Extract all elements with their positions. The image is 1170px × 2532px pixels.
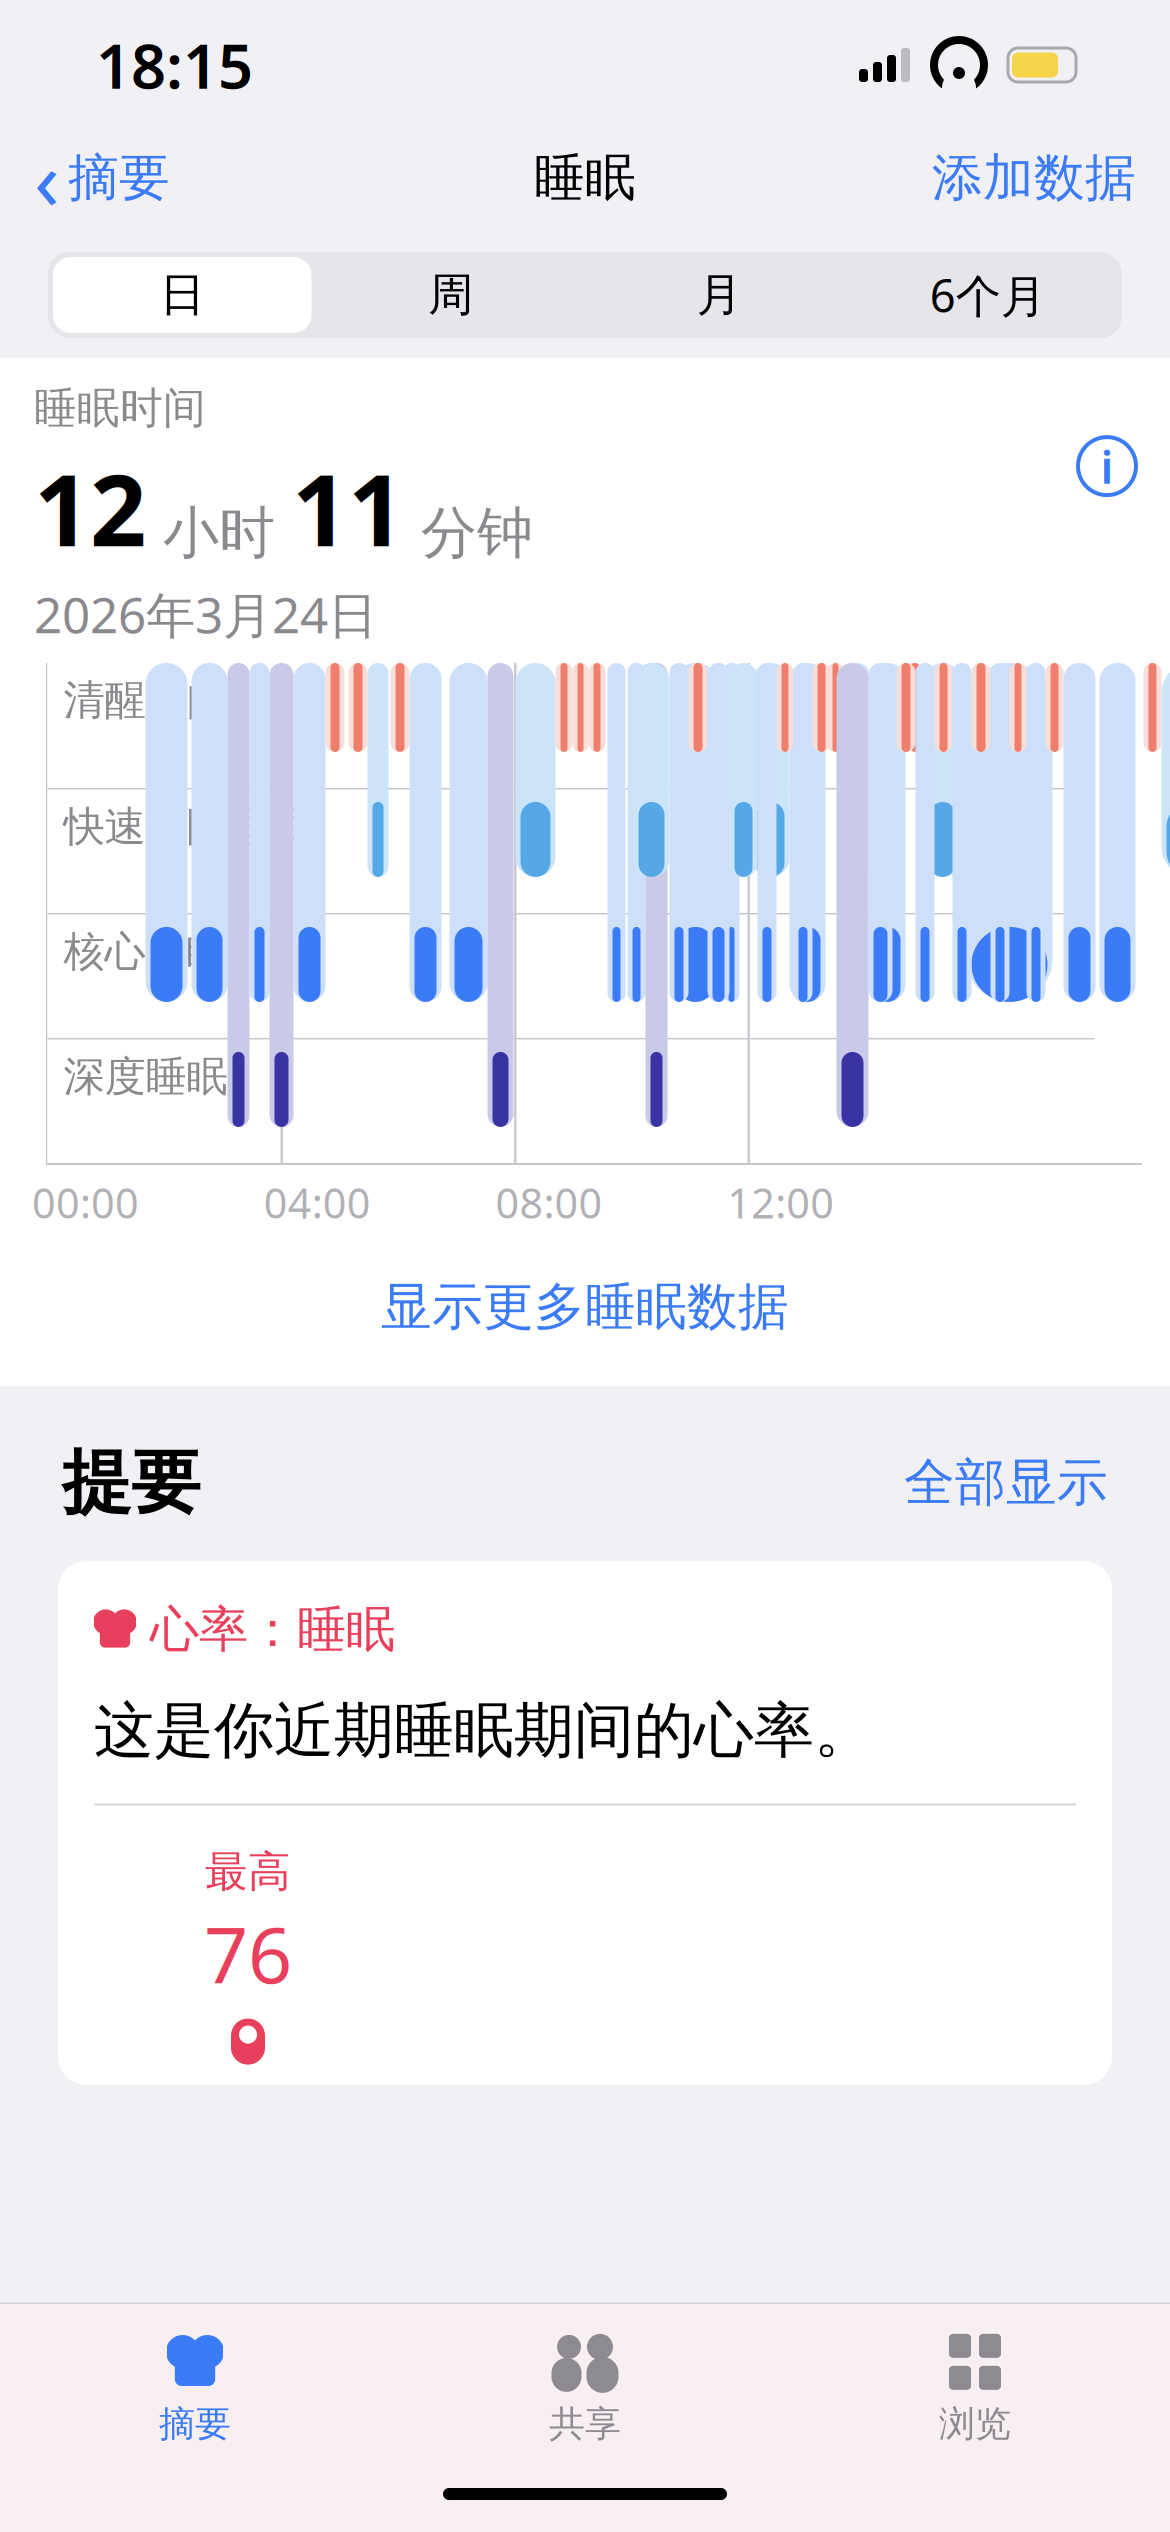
button[interactable]: 6个月 xyxy=(853,252,1122,338)
button[interactable]: 摘要 xyxy=(0,2314,390,2446)
staticText: 添加数据 xyxy=(932,147,1136,209)
staticText: 睡眠时间 xyxy=(34,382,206,434)
staticText: 04:00 xyxy=(264,1175,371,1230)
staticText: 这是你近期睡眠期间的心率。 xyxy=(94,1694,874,1767)
staticText: 12 xyxy=(34,442,146,573)
staticText: 18:15 xyxy=(96,24,253,106)
staticText: 深度睡眠 xyxy=(63,1051,227,1102)
button[interactable]: 关于睡眠数据 xyxy=(1064,422,1150,510)
button[interactable]: ‹ xyxy=(0,113,170,243)
staticText: 76 xyxy=(204,1902,292,2005)
button[interactable]: 浏览 xyxy=(780,2314,1170,2446)
staticText: 心率：睡眠 xyxy=(150,1599,395,1660)
button[interactable]: 周 xyxy=(316,252,585,338)
staticText: 00:00 xyxy=(32,1175,139,1230)
staticText: 浏览 xyxy=(939,2402,1011,2446)
staticText: ‹ xyxy=(34,123,60,233)
staticText: 11 xyxy=(292,442,404,573)
staticText: 显示更多睡眠数据 xyxy=(381,1276,789,1338)
staticText: 6个月 xyxy=(930,265,1046,325)
staticText: 最高 xyxy=(205,1845,291,1898)
staticText: 小时 xyxy=(146,499,292,567)
staticText: 全部显示 xyxy=(904,1451,1108,1514)
button[interactable]: 月 xyxy=(585,252,853,338)
staticText: 快速动眼睡眠 xyxy=(63,801,309,852)
staticText: 提要 xyxy=(62,1440,200,1525)
staticText: 睡眠 xyxy=(534,147,636,209)
staticText: 清醒时间 xyxy=(63,675,227,726)
button[interactable]: 全部显示 xyxy=(904,1443,1108,1522)
staticText: 核心睡眠 xyxy=(63,926,227,977)
staticText: 周 xyxy=(428,267,473,323)
button[interactable]: 心率：睡眠 xyxy=(58,1561,1112,2085)
staticText: 2026年3月24日 xyxy=(34,581,377,647)
button[interactable]: 添加数据 xyxy=(932,137,1170,219)
button[interactable]: 显示更多睡眠数据 xyxy=(0,1242,1170,1372)
staticText: 分钟 xyxy=(404,499,533,567)
staticText: 共享 xyxy=(549,2402,621,2446)
staticText: 08:00 xyxy=(495,1175,602,1230)
staticText: 摘要 xyxy=(68,147,170,209)
staticText: 摘要 xyxy=(159,2402,231,2446)
button[interactable]: 日 xyxy=(48,252,316,338)
staticText: i xyxy=(1100,436,1113,496)
staticText: 月 xyxy=(697,267,742,323)
staticText: 日 xyxy=(160,267,205,323)
button[interactable]: 共享 xyxy=(390,2314,780,2446)
staticText: 12:00 xyxy=(727,1175,834,1230)
